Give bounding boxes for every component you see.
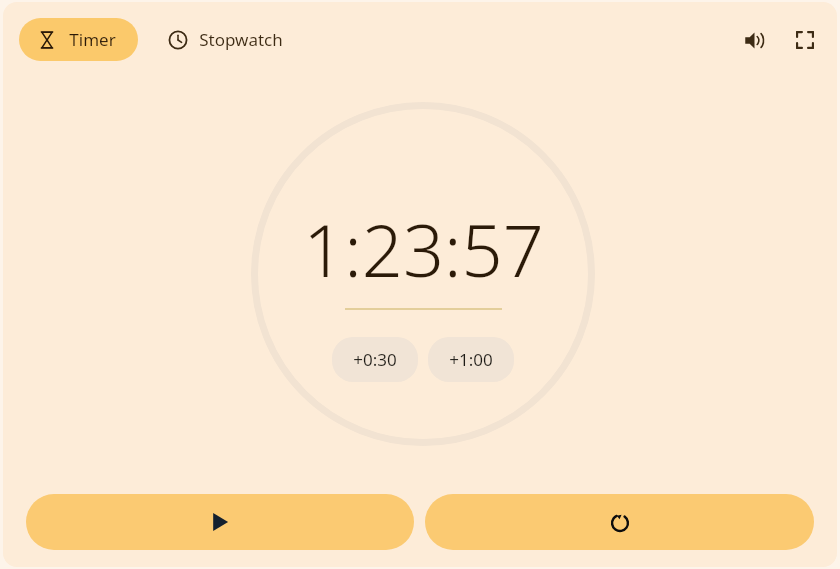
- button[interactable]: Stopwatch: [158, 18, 297, 61]
- button[interactable]: Sound: [736, 22, 772, 58]
- staticText: Timer: [69, 28, 116, 51]
- button[interactable]: +1:00: [428, 337, 514, 382]
- button[interactable]: +0:30: [332, 337, 418, 382]
- staticText: +1:00: [449, 348, 493, 371]
- button[interactable]: Fullscreen: [787, 22, 823, 58]
- staticText: 1:23:57: [303, 200, 544, 298]
- button[interactable]: Timer: [19, 18, 138, 61]
- staticText: Stopwatch: [199, 28, 283, 51]
- button[interactable]: Reset: [425, 494, 814, 550]
- staticText: +0:30: [353, 348, 397, 371]
- button[interactable]: Start: [26, 494, 414, 550]
